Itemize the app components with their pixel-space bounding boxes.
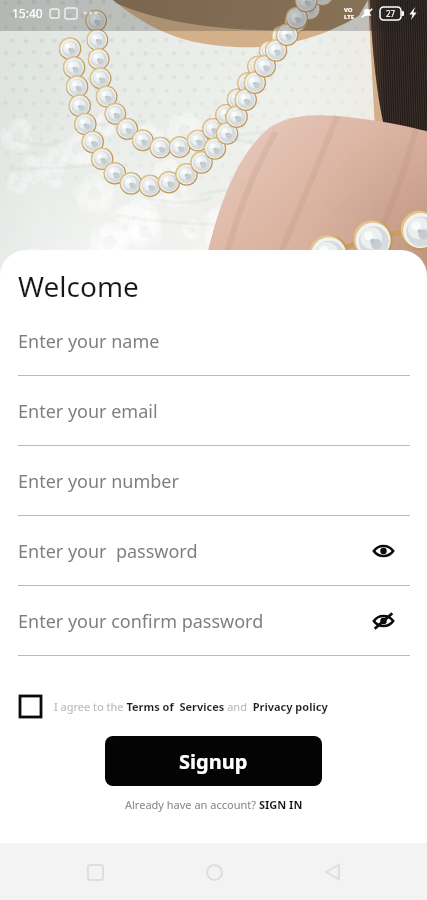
staticText: Enter your name: [18, 329, 160, 354]
other: Show password: [368, 538, 410, 564]
staticText: Welcome: [18, 267, 139, 305]
staticText: Enter your number: [18, 469, 179, 494]
button[interactable]: Enter your confirm password: [0, 607, 427, 677]
button[interactable]: Home: [190, 848, 238, 896]
staticText: 27: [386, 8, 396, 19]
other: Hide password: [368, 608, 410, 634]
staticText: I agree to the Terms of Services and Pri…: [54, 699, 328, 714]
staticText: SIGN IN: [259, 797, 303, 812]
button[interactable]: Already have an account?: [125, 797, 303, 812]
button[interactable]: Enter your name: [0, 327, 427, 397]
staticText: Signup: [179, 748, 248, 775]
staticText: Enter your confirm password: [18, 609, 264, 634]
staticText: Enter your email: [18, 399, 158, 424]
button[interactable]: Back: [308, 848, 356, 896]
button[interactable]: Signup: [105, 736, 322, 786]
button[interactable]: Recents: [71, 848, 119, 896]
button[interactable]: Enter your email: [0, 397, 427, 467]
staticText: 15:40: [12, 5, 43, 21]
staticText: Already have an account?: [125, 797, 259, 812]
staticText: Enter your password: [18, 539, 198, 564]
button[interactable]: Enter your password: [0, 537, 427, 607]
staticText: VO LTE: [344, 6, 355, 21]
button[interactable]: I agree to the Terms of Services and Pri…: [20, 696, 427, 717]
button[interactable]: Enter your number: [0, 467, 427, 537]
